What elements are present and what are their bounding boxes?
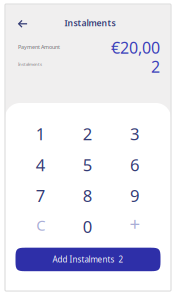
button[interactable]: 9 — [111, 180, 158, 211]
staticText: 0 — [83, 215, 93, 238]
button[interactable]: 6 — [111, 149, 158, 180]
staticText: 7 — [36, 184, 46, 207]
button[interactable]: 3 — [111, 118, 158, 149]
staticText: 6 — [130, 153, 140, 176]
staticText: + — [129, 211, 140, 236]
button[interactable]: + — [111, 208, 158, 239]
staticText: 2 — [151, 56, 160, 77]
button[interactable]: 1 — [17, 118, 64, 149]
button[interactable]: Back — [12, 13, 34, 35]
button[interactable]: 5 — [64, 149, 111, 180]
staticText: 3 — [130, 122, 140, 145]
staticText: Add Instalments 2 — [52, 254, 123, 265]
staticText: Payment Amount — [18, 43, 60, 51]
staticText: €20,00 — [111, 37, 160, 58]
staticText: 1 — [36, 122, 46, 145]
staticText: Instalments — [64, 17, 115, 29]
staticText: 9 — [130, 184, 140, 207]
staticText: 5 — [83, 153, 93, 176]
staticText: Instalments — [18, 61, 42, 67]
button[interactable]: C — [17, 210, 64, 240]
staticText: 4 — [36, 153, 46, 176]
button[interactable]: 8 — [64, 180, 111, 211]
button[interactable]: Add Instalments 2 — [15, 248, 160, 271]
staticText: 2 — [83, 122, 93, 145]
staticText: 8 — [83, 184, 93, 207]
button[interactable]: 4 — [17, 149, 64, 180]
button[interactable]: 2 — [64, 118, 111, 149]
staticText: C — [36, 215, 45, 235]
button[interactable]: 0 — [64, 211, 111, 242]
button[interactable]: 7 — [17, 180, 64, 211]
